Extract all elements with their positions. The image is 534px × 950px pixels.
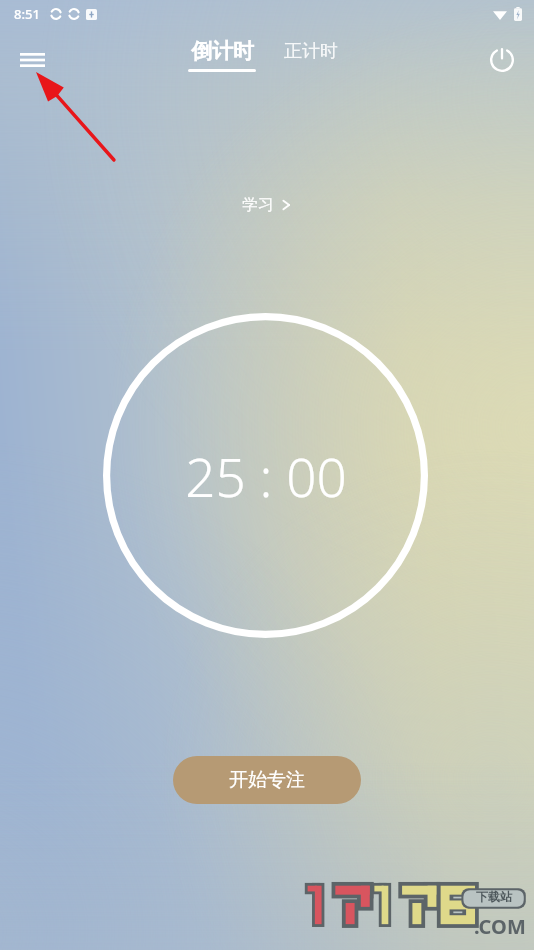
staticText: 学习	[242, 195, 274, 215]
staticText: 25 : 00	[185, 440, 347, 512]
staticText: 倒计时	[191, 38, 254, 64]
button[interactable]: 倒计时	[186, 38, 258, 72]
button[interactable]: 正计时	[282, 38, 340, 65]
button[interactable]: 25 : 00	[103, 313, 428, 638]
staticText: 开始专注	[229, 768, 305, 792]
staticText: 8:51	[14, 5, 40, 23]
staticText: .COM	[474, 913, 526, 940]
staticText: 下载站	[476, 889, 512, 904]
button[interactable]: 学习	[228, 190, 306, 220]
button[interactable]: Power	[480, 38, 524, 82]
button[interactable]: Menu	[10, 38, 54, 82]
staticText: 正计时	[284, 40, 338, 63]
button[interactable]: 开始专注	[173, 756, 361, 804]
